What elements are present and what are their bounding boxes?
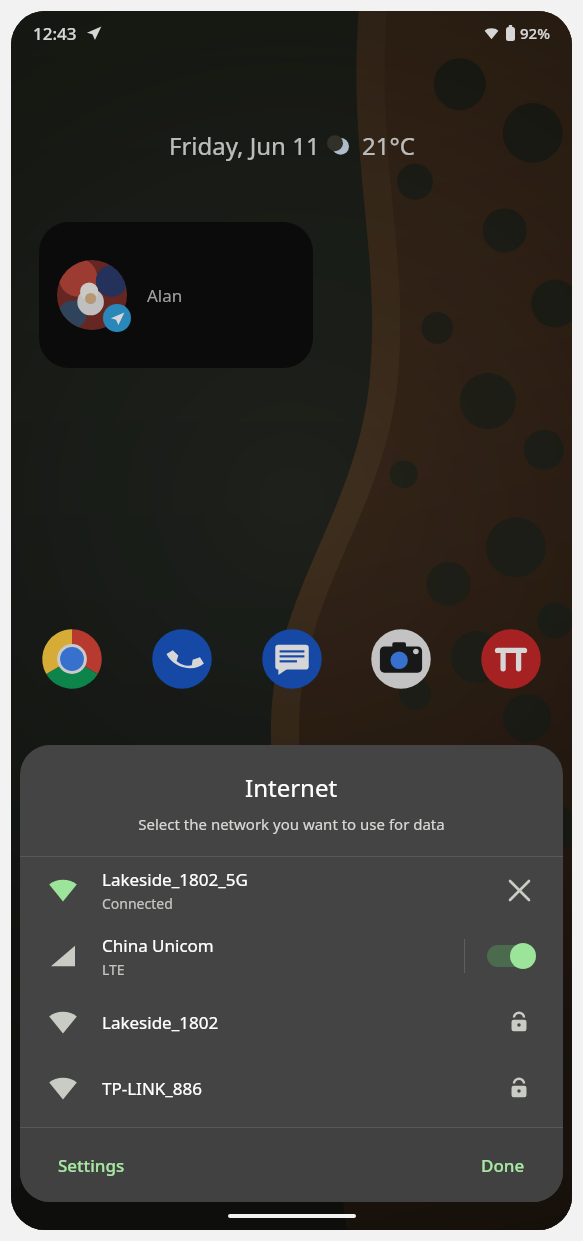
staticText: Select the network you want to use for d… — [138, 814, 445, 834]
staticText: TP-LINK_886 — [102, 1077, 203, 1100]
button[interactable]: Friday, Jun 11 — [11, 129, 572, 162]
button[interactable]: Calculator — [480, 628, 542, 690]
button[interactable]: Done — [473, 1148, 533, 1183]
staticText: LTE — [102, 960, 125, 979]
staticText: Settings — [58, 1154, 125, 1177]
staticText: Internet — [245, 771, 338, 804]
button[interactable]: Settings — [50, 1148, 133, 1183]
button[interactable]: Camera — [370, 628, 432, 690]
button[interactable]: Lakeside_1802 — [20, 989, 563, 1055]
staticText: Lakeside_1802 — [102, 1011, 219, 1034]
button[interactable]: Lakeside_1802_5G — [20, 857, 563, 923]
staticText: Lakeside_1802_5G — [102, 868, 248, 891]
button[interactable]: TP-LINK_886 — [20, 1055, 563, 1121]
staticText: Connected — [102, 894, 173, 913]
staticText: 21°C — [362, 129, 415, 162]
staticText: Done — [481, 1154, 525, 1177]
button[interactable]: Disconnect — [497, 868, 541, 912]
button[interactable]: Alan — [39, 222, 313, 368]
button[interactable]: Secured network — [497, 1000, 541, 1044]
staticText: 12:43 — [33, 22, 77, 45]
button[interactable]: Secured network — [497, 1066, 541, 1110]
button[interactable]: Phone — [151, 628, 213, 690]
staticText: China Unicom — [102, 934, 214, 957]
button[interactable]: China Unicom — [20, 923, 563, 989]
button[interactable]: Chrome — [41, 628, 103, 690]
button[interactable]: Messages — [261, 628, 323, 690]
staticText: Friday, Jun 11 — [169, 129, 320, 162]
staticText: Alan — [147, 284, 183, 307]
button[interactable]: Mobile data toggle — [487, 940, 539, 972]
staticText: 92% — [520, 23, 550, 43]
